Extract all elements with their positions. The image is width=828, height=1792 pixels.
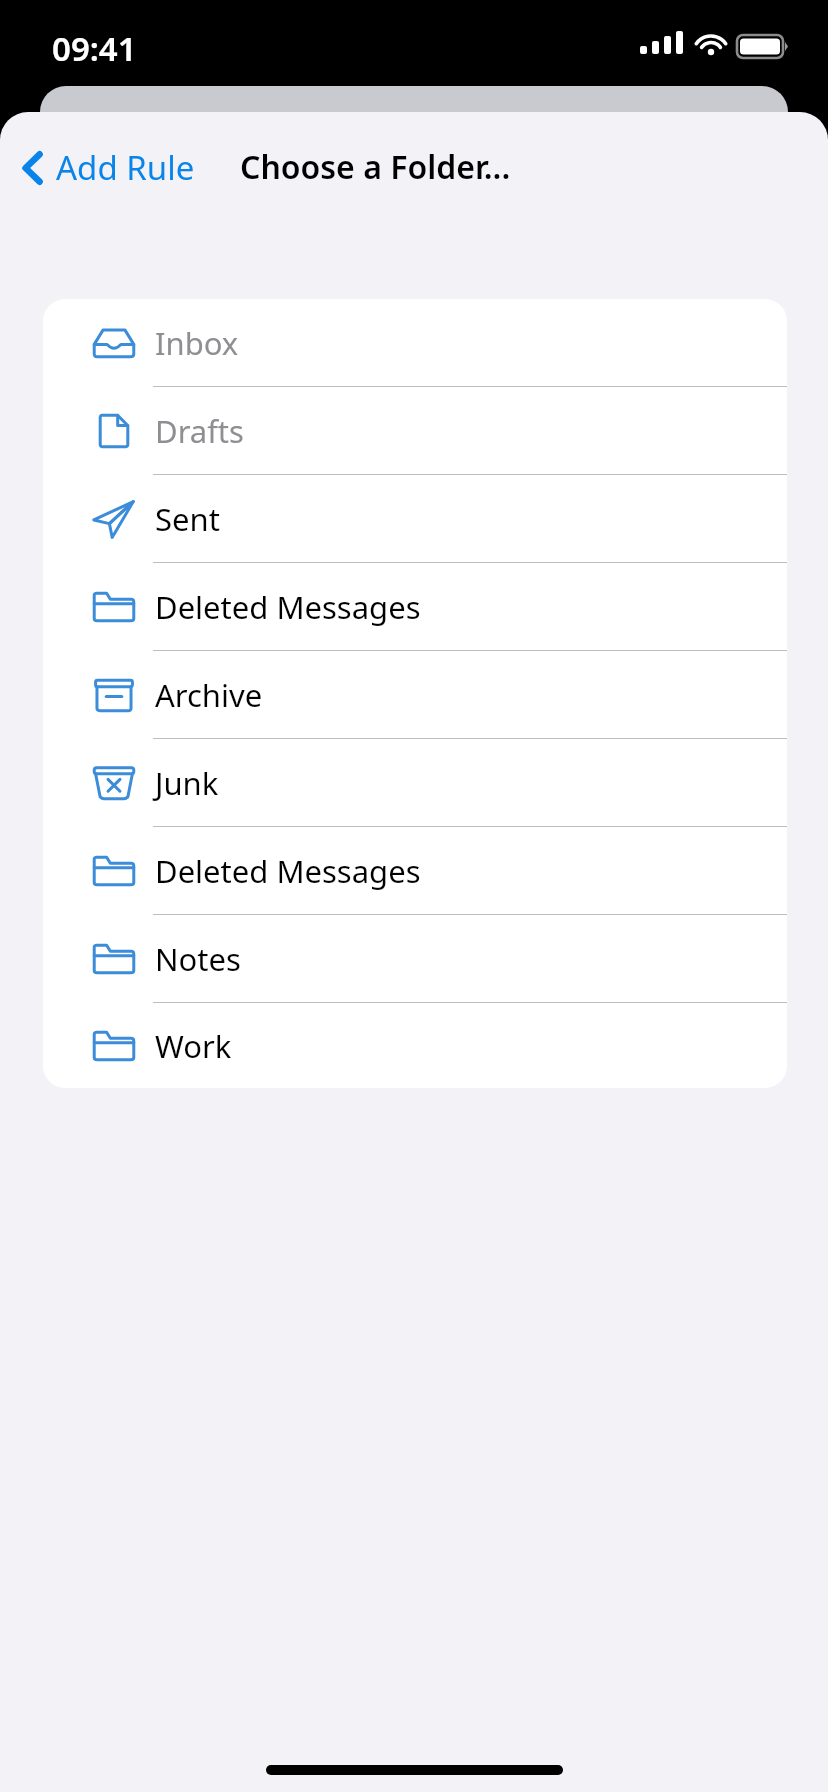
staticText: Choose a Folder... xyxy=(240,145,511,189)
staticText: Notes xyxy=(155,938,241,980)
button[interactable]: Notes xyxy=(43,915,787,1003)
button[interactable]: Deleted Messages xyxy=(43,827,787,915)
staticText: Junk xyxy=(155,762,219,804)
button[interactable]: Drafts xyxy=(43,387,787,475)
staticText: Work xyxy=(155,1025,232,1067)
button[interactable]: Deleted Messages xyxy=(43,563,787,651)
button[interactable]: Inbox xyxy=(43,299,787,387)
staticText: Drafts xyxy=(155,410,244,452)
staticText: Sent xyxy=(155,498,220,540)
staticText: Inbox xyxy=(155,322,239,364)
staticText: Add Rule xyxy=(56,145,195,190)
staticText: Deleted Messages xyxy=(155,586,421,628)
button[interactable]: Archive xyxy=(43,651,787,739)
button[interactable]: Junk xyxy=(43,739,787,827)
button[interactable]: Work xyxy=(43,1003,787,1088)
staticText: Deleted Messages xyxy=(155,850,421,892)
button[interactable]: Sent xyxy=(43,475,787,563)
button[interactable]: Add Rule xyxy=(0,137,209,198)
staticText: 09:41 xyxy=(52,26,137,71)
staticText: Archive xyxy=(155,674,263,716)
